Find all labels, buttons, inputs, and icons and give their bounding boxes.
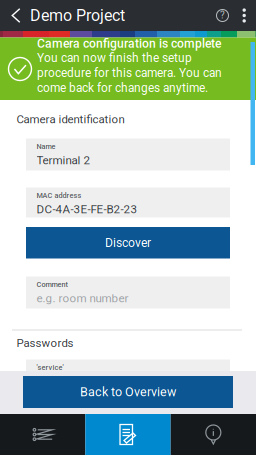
staticText: Comment xyxy=(36,280,67,289)
staticText: ? xyxy=(220,9,225,21)
button[interactable]: Name xyxy=(26,138,230,170)
button[interactable]: MAC address xyxy=(26,187,230,217)
staticText: DC-4A-3E-FE-B2-23 xyxy=(36,202,137,216)
button[interactable]: Configuration xyxy=(85,414,171,455)
button[interactable]: Help xyxy=(209,0,235,31)
button[interactable]: Back to Overview xyxy=(23,376,233,408)
staticText: e.g. room number xyxy=(36,291,128,305)
staticText: Passwords xyxy=(16,336,73,350)
staticText: 'service' xyxy=(36,363,63,372)
staticText: Discover xyxy=(105,236,151,250)
button[interactable]: Back xyxy=(2,0,30,31)
button[interactable]: Overview list xyxy=(0,414,85,455)
staticText: Name xyxy=(36,142,55,151)
staticText: Demo Project xyxy=(30,6,125,25)
button[interactable]: Discover xyxy=(26,227,230,258)
staticText: Camera configuration is complete xyxy=(37,36,221,51)
staticText: Terminal 2 xyxy=(36,153,90,167)
staticText: Camera identification xyxy=(16,112,124,126)
staticText: Back to Overview xyxy=(80,385,176,399)
button[interactable]: More options xyxy=(234,0,254,31)
button[interactable]: Comment xyxy=(26,276,230,308)
button[interactable]: 'service' xyxy=(26,359,230,391)
staticText: MAC address xyxy=(36,191,81,200)
button[interactable]: Information xyxy=(171,414,256,455)
staticText: You can now finish the setup procedure f… xyxy=(37,51,222,95)
